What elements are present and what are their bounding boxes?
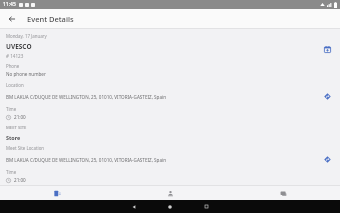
button[interactable]: Add to calendar xyxy=(320,42,334,56)
staticText: MEET SITE xyxy=(6,125,27,131)
staticText: 21:00 xyxy=(14,177,26,183)
staticText: Store xyxy=(6,134,21,141)
staticText: BM LAKUA C/DUQUE DE WELLINGTON, 25, 0101… xyxy=(6,94,321,100)
button[interactable]: People xyxy=(114,186,227,200)
staticText: Meet Site Location xyxy=(6,145,45,151)
staticText: Monday, 17 January xyxy=(6,33,47,39)
button[interactable]: Back xyxy=(127,200,141,213)
staticText: Event Details xyxy=(27,14,74,24)
staticText: Phone xyxy=(6,63,20,69)
button[interactable]: Home xyxy=(163,200,177,213)
staticText: UVESCO xyxy=(6,42,32,51)
staticText: # 14123 xyxy=(6,53,24,59)
staticText: 21:00 xyxy=(14,114,26,120)
button[interactable]: Notes xyxy=(227,186,340,200)
staticText: Time xyxy=(6,106,17,112)
staticText: BM LAKUA C/DUQUE DE WELLINGTON, 25, 0101… xyxy=(6,157,321,163)
button[interactable]: Open meet site location in maps xyxy=(321,153,334,166)
staticText: No phone number xyxy=(6,71,46,77)
staticText: Time xyxy=(6,169,17,175)
button[interactable]: Back xyxy=(5,12,19,26)
button[interactable]: Event xyxy=(0,186,114,200)
staticText: 11:45 xyxy=(3,1,16,8)
button[interactable]: Open location in maps xyxy=(321,90,334,103)
button[interactable]: Recent apps xyxy=(199,200,213,213)
staticText: Location xyxy=(6,82,24,88)
